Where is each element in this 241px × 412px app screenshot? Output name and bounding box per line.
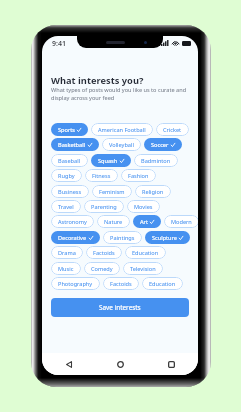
staticText: Save interests: [99, 303, 141, 312]
staticText: Movies: [134, 203, 153, 211]
staticText: Feminism: [99, 188, 125, 196]
staticText: Factoids: [110, 280, 132, 288]
button[interactable]: Drama: [51, 246, 83, 259]
button[interactable]: Education: [125, 246, 166, 259]
button[interactable]: Basketball: [51, 138, 99, 151]
button[interactable]: Factoids: [103, 277, 139, 290]
staticText: What types of posts would you like us to…: [51, 86, 193, 102]
staticText: Paintings: [110, 234, 135, 242]
button[interactable]: Sports: [51, 123, 88, 136]
button[interactable]: Fitness: [85, 169, 118, 182]
staticText: Baseball: [58, 157, 81, 165]
button[interactable]: Religion: [135, 185, 171, 198]
button[interactable]: Feminism: [92, 185, 132, 198]
staticText: Basketball: [58, 141, 86, 149]
staticText: Badminton: [141, 157, 171, 165]
button[interactable]: Television: [123, 262, 163, 275]
button[interactable]: Travel: [51, 200, 81, 213]
button[interactable]: Back: [62, 357, 76, 371]
button[interactable]: Volleyball: [102, 138, 141, 151]
button[interactable]: Rugby: [51, 169, 82, 182]
staticText: 9:41: [52, 39, 66, 49]
button[interactable]: Astronomy: [51, 215, 94, 228]
button[interactable]: Soccer: [144, 138, 182, 151]
staticText: Music: [58, 265, 74, 273]
button[interactable]: Cricket: [156, 123, 189, 136]
button[interactable]: Squash: [91, 154, 131, 167]
staticText: Fashion: [128, 172, 149, 180]
button[interactable]: Factoids: [86, 246, 122, 259]
staticText: Astronomy: [58, 218, 87, 226]
staticText: Soccer: [151, 141, 169, 149]
staticText: Nature: [104, 218, 123, 226]
staticText: Parenting: [91, 203, 117, 211]
staticText: What interests you?: [51, 74, 144, 87]
button[interactable]: Home: [113, 357, 127, 371]
button[interactable]: American Football: [91, 123, 153, 136]
button[interactable]: Baseball: [51, 154, 88, 167]
button[interactable]: Recent apps: [164, 357, 178, 371]
button[interactable]: Education: [142, 277, 183, 290]
staticText: Sports: [58, 126, 75, 134]
button[interactable]: Nature: [97, 215, 130, 228]
staticText: Fitness: [92, 172, 111, 180]
staticText: American Football: [98, 126, 146, 134]
staticText: Education: [149, 280, 176, 288]
button[interactable]: Paintings: [103, 231, 142, 244]
staticText: Sculpture: [152, 234, 177, 242]
staticText: Decorative: [58, 234, 87, 242]
button[interactable]: Photography: [51, 277, 100, 290]
staticText: Art: [140, 218, 148, 226]
staticText: Comedy: [91, 265, 113, 273]
button[interactable]: Sculpture: [145, 231, 190, 244]
button[interactable]: Parenting: [84, 200, 124, 213]
staticText: Rugby: [58, 172, 75, 180]
button[interactable]: Comedy: [84, 262, 120, 275]
staticText: Modern: [171, 218, 192, 226]
button[interactable]: Fashion: [121, 169, 156, 182]
button[interactable]: Decorative: [51, 231, 100, 244]
button[interactable]: Music: [51, 262, 81, 275]
staticText: Television: [130, 265, 156, 273]
staticText: Drama: [58, 249, 76, 257]
staticText: Squash: [98, 157, 118, 165]
staticText: Factoids: [93, 249, 115, 257]
button[interactable]: Art: [133, 215, 161, 228]
staticText: Photography: [58, 280, 93, 288]
button[interactable]: Business: [51, 185, 89, 198]
button[interactable]: Save interests: [51, 298, 189, 317]
staticText: Cricket: [163, 126, 182, 134]
staticText: Education: [132, 249, 159, 257]
staticText: Religion: [142, 188, 164, 196]
button[interactable]: Badminton: [134, 154, 178, 167]
button[interactable]: Modern: [164, 215, 198, 228]
button[interactable]: Movies: [127, 200, 160, 213]
staticText: Business: [58, 188, 82, 196]
staticText: Travel: [58, 203, 74, 211]
staticText: Volleyball: [109, 141, 134, 149]
